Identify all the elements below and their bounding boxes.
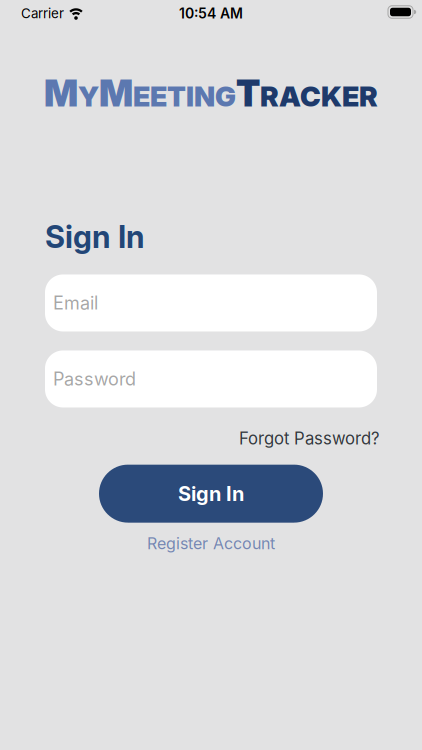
staticText: Y <box>78 79 99 113</box>
staticText: M <box>44 71 78 115</box>
staticText: EETING <box>133 79 236 113</box>
staticText: RACKER <box>260 79 378 113</box>
staticText: 10:54 AM <box>179 5 243 22</box>
button[interactable]: Forgot Password? <box>239 428 380 449</box>
staticText: Register Account <box>147 534 275 553</box>
staticText: Email <box>53 292 98 314</box>
staticText: T <box>236 71 260 115</box>
staticText: M <box>99 71 133 115</box>
button[interactable]: Email <box>45 274 377 331</box>
button[interactable]: Register Account <box>147 534 275 553</box>
button[interactable]: Sign In <box>99 465 323 523</box>
staticText: Sign In <box>178 481 244 506</box>
staticText: Sign In <box>45 218 145 255</box>
button[interactable]: Password <box>45 350 377 407</box>
staticText: Password <box>53 368 136 390</box>
staticText: Forgot Password? <box>239 428 380 449</box>
staticText: Carrier <box>21 5 64 21</box>
